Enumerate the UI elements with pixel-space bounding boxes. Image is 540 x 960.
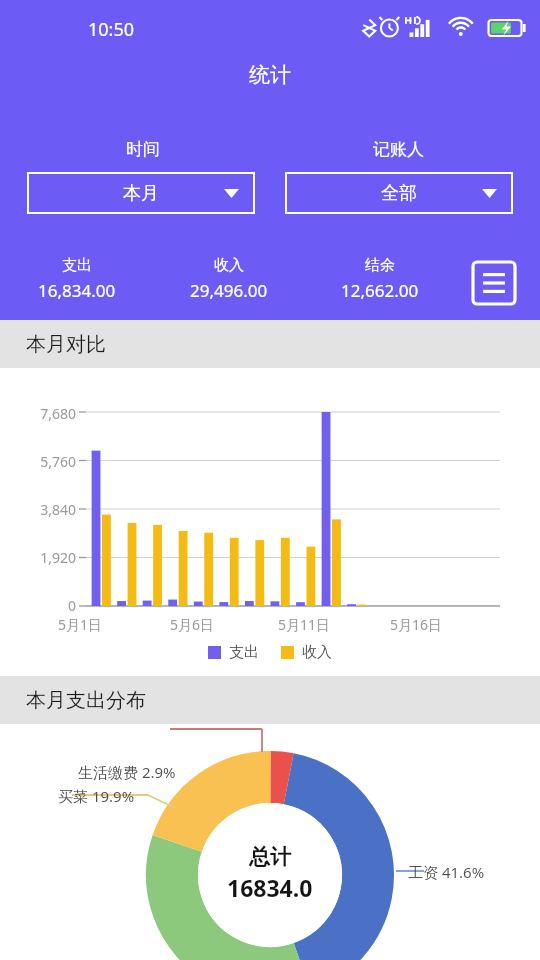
staticText: 5月11日	[278, 615, 331, 634]
staticText: 5,760	[40, 452, 76, 471]
staticText: 支出	[62, 256, 92, 275]
staticText: 3,840	[40, 500, 76, 519]
staticText: 10:50	[88, 17, 135, 42]
button[interactable]: Menu	[466, 257, 522, 309]
staticText: 5月6日	[170, 615, 215, 634]
staticText: 5月16日	[390, 615, 443, 634]
staticText: 本月	[123, 182, 159, 205]
staticText: 29,496.00	[190, 279, 268, 302]
staticText: 16834.0	[227, 872, 313, 903]
staticText: 生活缴费 2.9%	[78, 762, 176, 782]
staticText: 时间	[126, 139, 160, 160]
staticText: 收入	[214, 256, 244, 275]
staticText: 全部	[381, 182, 417, 205]
staticText: 本月对比	[26, 332, 106, 357]
staticText: 收入	[302, 643, 332, 662]
staticText: 本月支出分布	[26, 688, 146, 713]
staticText: 支出	[229, 643, 259, 662]
button[interactable]: 本月	[27, 172, 255, 214]
staticText: 买菜 19.9%	[58, 786, 135, 806]
staticText: 工资 41.6%	[408, 862, 485, 882]
staticText: 记账人	[373, 139, 424, 160]
button[interactable]: 全部	[285, 172, 513, 214]
staticText: 1,920	[40, 548, 76, 567]
staticText: 统计	[249, 62, 291, 88]
staticText: 结余	[365, 256, 395, 275]
staticText: 12,662.00	[341, 279, 419, 302]
staticText: 总计	[249, 844, 291, 870]
staticText: 0	[67, 596, 76, 615]
staticText: 7,680	[40, 404, 76, 423]
staticText: 16,834.00	[38, 279, 116, 302]
staticText: 5月1日	[58, 615, 103, 634]
